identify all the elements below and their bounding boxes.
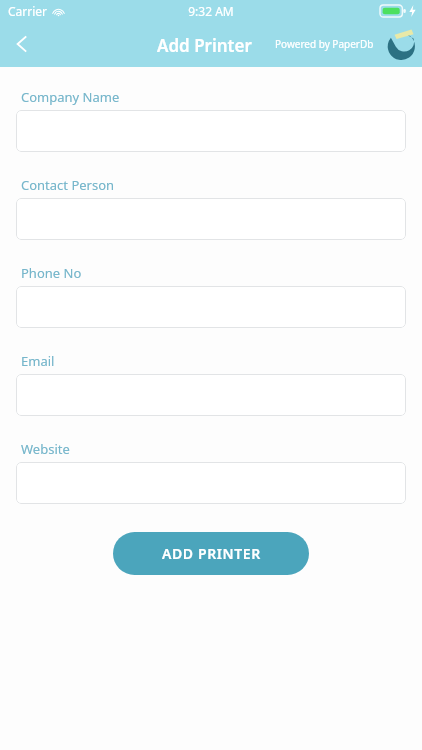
button[interactable] [16, 374, 406, 416]
button[interactable] [16, 110, 406, 152]
button[interactable]: PaperDb logo [385, 26, 419, 60]
staticText: Carrier [8, 3, 48, 19]
staticText: Website [21, 440, 70, 458]
staticText: ADD PRINTER [162, 544, 261, 563]
staticText: Powered by PaperDb [275, 37, 374, 51]
staticText: Phone No [21, 264, 82, 282]
button[interactable] [16, 286, 406, 328]
button[interactable]: ADD PRINTER [113, 532, 309, 575]
button[interactable] [16, 198, 406, 240]
button[interactable] [16, 462, 406, 504]
staticText: Email [21, 352, 55, 370]
button[interactable]: Back [2, 24, 42, 64]
staticText: Company Name [21, 88, 120, 106]
staticText: Contact Person [21, 176, 115, 194]
staticText: Add Printer [157, 34, 252, 57]
staticText: 9:32 AM [188, 3, 234, 19]
